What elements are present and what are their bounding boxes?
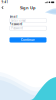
button[interactable]: Continue xyxy=(9,37,46,42)
button[interactable]: Back xyxy=(0,5,5,10)
staticText: Email xyxy=(9,15,17,18)
staticText: Password xyxy=(9,22,22,26)
button[interactable]: Password xyxy=(9,26,46,30)
staticText: Password xyxy=(11,26,23,30)
staticText: 9:41 xyxy=(2,0,9,4)
staticText: Continue xyxy=(21,38,35,42)
button[interactable]: Enter email xyxy=(9,18,46,23)
staticText: Enter email xyxy=(11,19,26,22)
staticText: Sign Up xyxy=(20,5,36,10)
